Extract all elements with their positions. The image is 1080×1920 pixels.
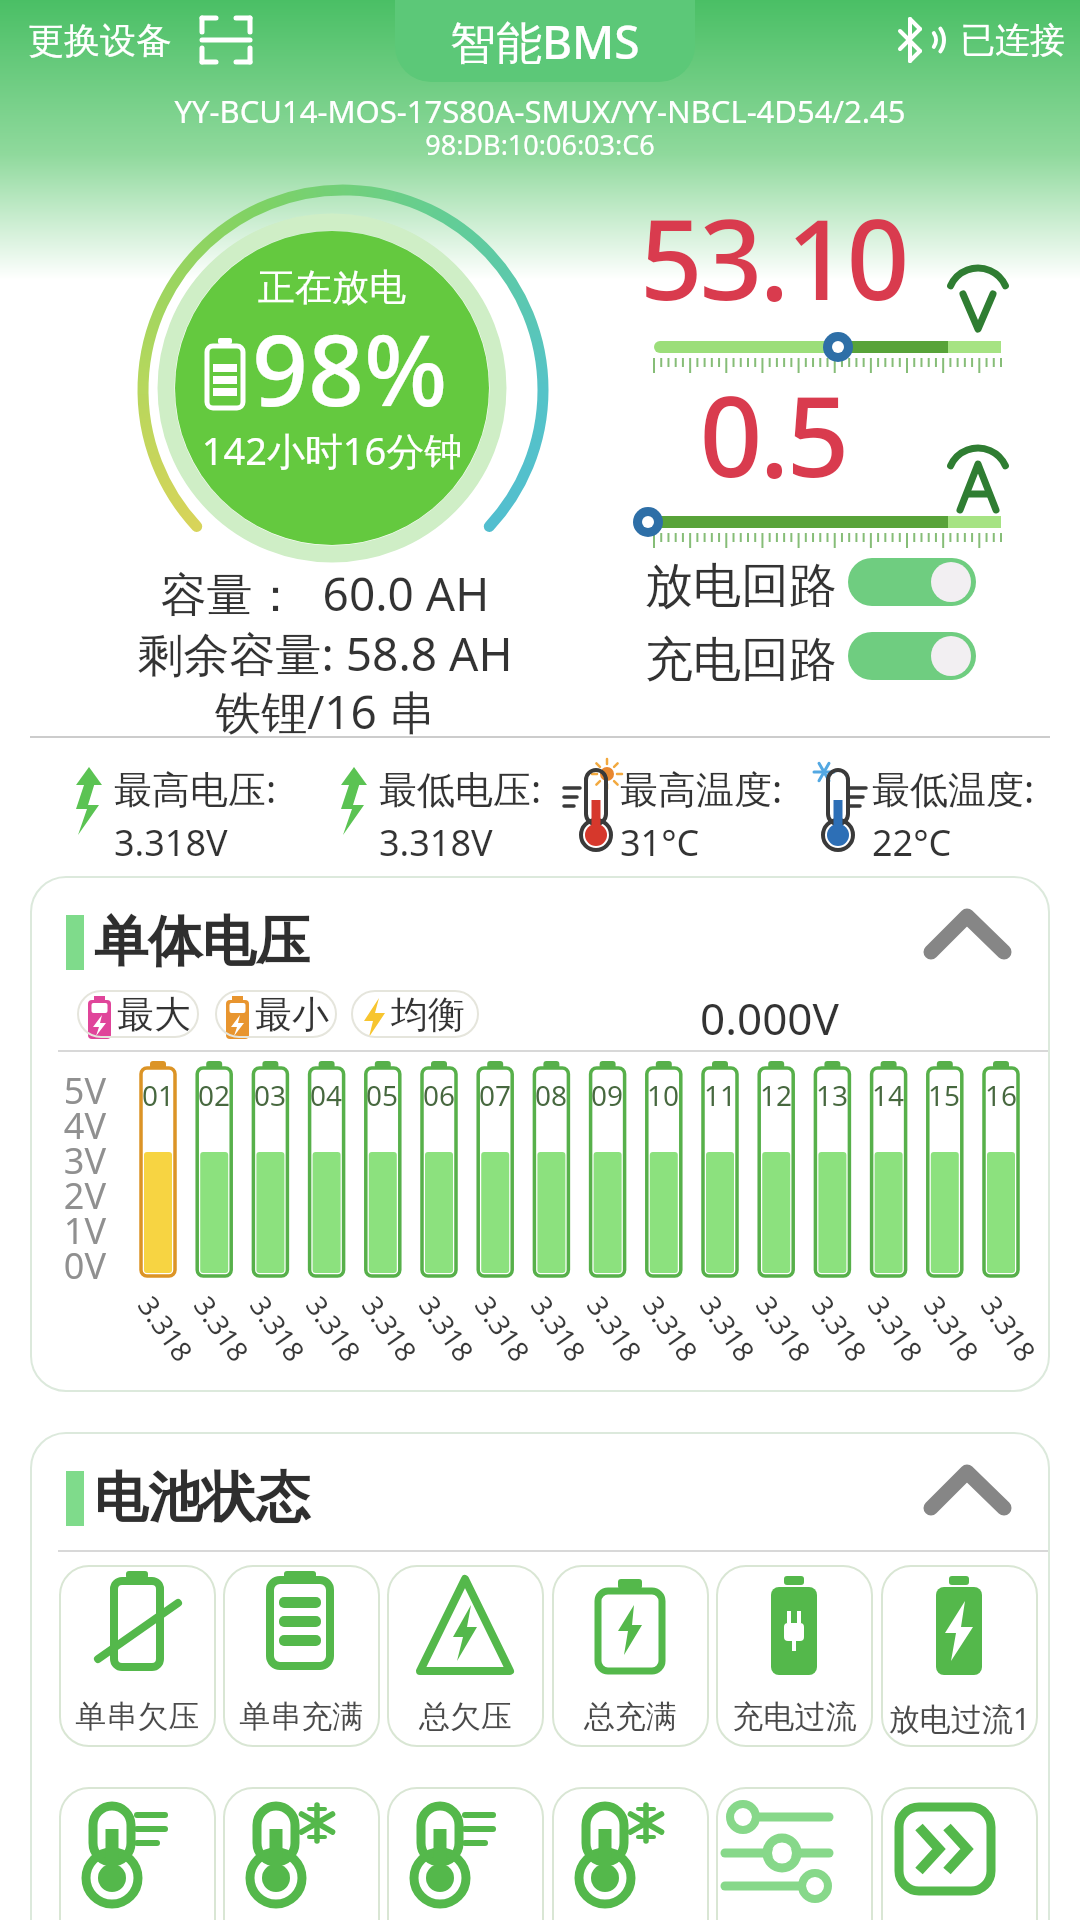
button[interactable]: 已连接 bbox=[898, 16, 1065, 64]
staticText: 0.5 bbox=[613, 359, 933, 509]
staticText: 智能BMS bbox=[450, 10, 640, 73]
staticText: 53.10 bbox=[613, 182, 933, 332]
staticText: 充电过流 bbox=[716, 1697, 873, 1736]
staticText: 31°C bbox=[620, 818, 700, 867]
staticText: 3.318V bbox=[379, 818, 493, 867]
staticText: 04 bbox=[298, 1076, 354, 1114]
staticText: 02 bbox=[186, 1076, 242, 1114]
button[interactable]: 最大 bbox=[77, 990, 199, 1038]
staticText: 最大 bbox=[117, 991, 191, 1038]
staticText: 3.318V bbox=[114, 818, 228, 867]
staticText: 22°C bbox=[872, 818, 952, 867]
staticText: 98% bbox=[252, 301, 448, 434]
staticText: 3.318 bbox=[748, 1288, 820, 1369]
staticText: 已连接 bbox=[960, 18, 1065, 62]
staticText: 1V bbox=[44, 1206, 106, 1255]
staticText: 03 bbox=[242, 1076, 298, 1114]
staticText: 充电回路 bbox=[645, 630, 837, 690]
staticText: 3.318 bbox=[186, 1288, 258, 1369]
button[interactable] bbox=[59, 1787, 216, 1920]
button[interactable] bbox=[925, 908, 1010, 956]
staticText: 16 bbox=[973, 1076, 1029, 1114]
staticText: 放电过流1 bbox=[881, 1697, 1038, 1739]
button[interactable] bbox=[925, 1464, 1010, 1512]
staticText: 最小 bbox=[255, 991, 329, 1038]
staticText: 05 bbox=[354, 1076, 410, 1114]
staticText: 13 bbox=[804, 1076, 860, 1114]
button[interactable] bbox=[223, 1787, 380, 1920]
staticText: 14 bbox=[860, 1076, 916, 1114]
staticText: 09 bbox=[579, 1076, 635, 1114]
staticText: 更换设备 bbox=[28, 18, 172, 63]
button[interactable]: 充电过流 bbox=[716, 1565, 873, 1747]
button[interactable]: 最小 bbox=[215, 990, 337, 1038]
staticText: 3.318 bbox=[692, 1288, 764, 1369]
staticText: 单串欠压 bbox=[59, 1697, 216, 1736]
staticText: 12 bbox=[748, 1076, 804, 1114]
button[interactable] bbox=[716, 1787, 873, 1920]
staticText: 01 bbox=[130, 1076, 186, 1114]
staticText: 3V bbox=[44, 1136, 106, 1185]
button[interactable]: 放电过流1 bbox=[881, 1565, 1038, 1747]
button[interactable]: 总充满 bbox=[552, 1565, 709, 1747]
staticText: 4V bbox=[44, 1101, 106, 1150]
staticText: 单体电压 bbox=[94, 908, 310, 976]
staticText: 2V bbox=[44, 1171, 106, 1220]
staticText: 3.318 bbox=[635, 1288, 707, 1369]
staticText: 最高温度: bbox=[620, 762, 783, 814]
staticText: 5V bbox=[44, 1066, 106, 1115]
staticText: 正在放电 bbox=[132, 264, 532, 311]
staticText: 单串充满 bbox=[223, 1697, 380, 1736]
button[interactable] bbox=[552, 1787, 709, 1920]
staticText: 容量： 60.0 AH bbox=[125, 562, 525, 625]
staticText: 11 bbox=[692, 1076, 748, 1114]
staticText: 最高电压: bbox=[114, 762, 277, 814]
staticText: 3.318 bbox=[130, 1288, 202, 1369]
staticText: 放电回路 bbox=[645, 556, 837, 616]
staticText: 3.318 bbox=[579, 1288, 651, 1369]
staticText: 电池状态 bbox=[94, 1464, 310, 1532]
staticText: 3.318 bbox=[354, 1288, 426, 1369]
staticText: 3.318 bbox=[411, 1288, 483, 1369]
button[interactable]: 更换设备 bbox=[28, 18, 172, 63]
staticText: 3.318 bbox=[973, 1288, 1045, 1369]
button[interactable] bbox=[200, 16, 252, 64]
button[interactable] bbox=[387, 1787, 544, 1920]
button[interactable]: 总欠压 bbox=[387, 1565, 544, 1747]
staticText: 铁锂/16 串 bbox=[125, 680, 525, 743]
staticText: 3.318 bbox=[916, 1288, 988, 1369]
staticText: 最低温度: bbox=[872, 762, 1035, 814]
button[interactable]: 智能BMS bbox=[395, 0, 695, 82]
staticText: 均衡 bbox=[391, 991, 465, 1038]
staticText: 0.000V bbox=[700, 988, 839, 1048]
staticText: 3.318 bbox=[804, 1288, 876, 1369]
staticText: 总欠压 bbox=[387, 1697, 544, 1736]
button[interactable] bbox=[881, 1787, 1038, 1920]
staticText: YY-BCU14-MOS-17S80A-SMUX/YY-NBCL-4D54/2.… bbox=[0, 90, 1080, 132]
staticText: 3.318 bbox=[467, 1288, 539, 1369]
button[interactable]: 均衡 bbox=[351, 990, 479, 1038]
staticText: 06 bbox=[411, 1076, 467, 1114]
button[interactable]: 单串欠压 bbox=[59, 1565, 216, 1747]
staticText: 10 bbox=[635, 1076, 691, 1114]
staticText: 总充满 bbox=[552, 1697, 709, 1736]
staticText: 3.318 bbox=[523, 1288, 595, 1369]
staticText: 98:DB:10:06:03:C6 bbox=[0, 126, 1080, 163]
button[interactable]: 单串充满 bbox=[223, 1565, 380, 1747]
button[interactable] bbox=[848, 558, 976, 606]
staticText: 3.318 bbox=[298, 1288, 370, 1369]
staticText: 3.318 bbox=[242, 1288, 314, 1369]
staticText: 08 bbox=[523, 1076, 579, 1114]
staticText: 剩余容量: 58.8 AH bbox=[125, 622, 525, 685]
staticText: 07 bbox=[467, 1076, 523, 1114]
button[interactable] bbox=[848, 632, 976, 680]
staticText: 0V bbox=[44, 1241, 106, 1290]
staticText: 最低电压: bbox=[379, 762, 542, 814]
staticText: 3.318 bbox=[860, 1288, 932, 1369]
staticText: 142小时16分钟 bbox=[132, 424, 532, 476]
staticText: 15 bbox=[916, 1076, 972, 1114]
